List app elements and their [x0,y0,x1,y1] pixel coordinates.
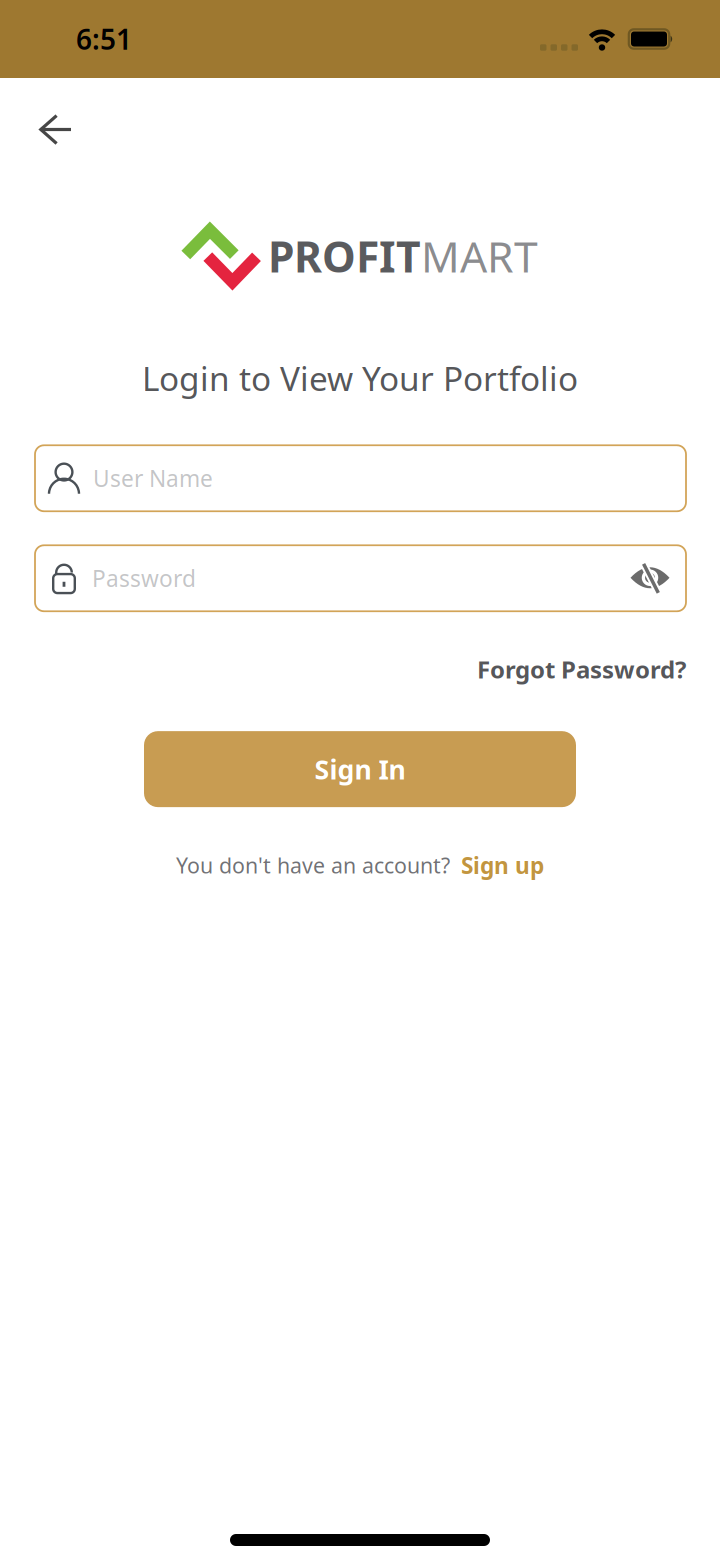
button[interactable]: Password [35,545,686,611]
button[interactable]: Sign up [461,850,544,880]
staticText: 6:51 [76,20,132,58]
staticText: Forgot Password? [477,653,686,685]
staticText: Sign In [314,751,405,787]
staticText: PROFIT [268,228,421,284]
staticText: Sign up [461,850,544,880]
button[interactable]: Back [39,114,73,146]
staticText: MART [421,228,538,284]
button[interactable]: Show password [630,562,670,594]
button[interactable]: Sign In [144,731,576,807]
button[interactable]: User Name [35,445,686,511]
button[interactable]: Forgot Password? [477,653,686,685]
staticText: User Name [93,463,213,493]
staticText: Password [92,563,196,593]
staticText: Login to View Your Portfolio [142,356,578,400]
staticText: You don't have an account? [176,851,450,879]
